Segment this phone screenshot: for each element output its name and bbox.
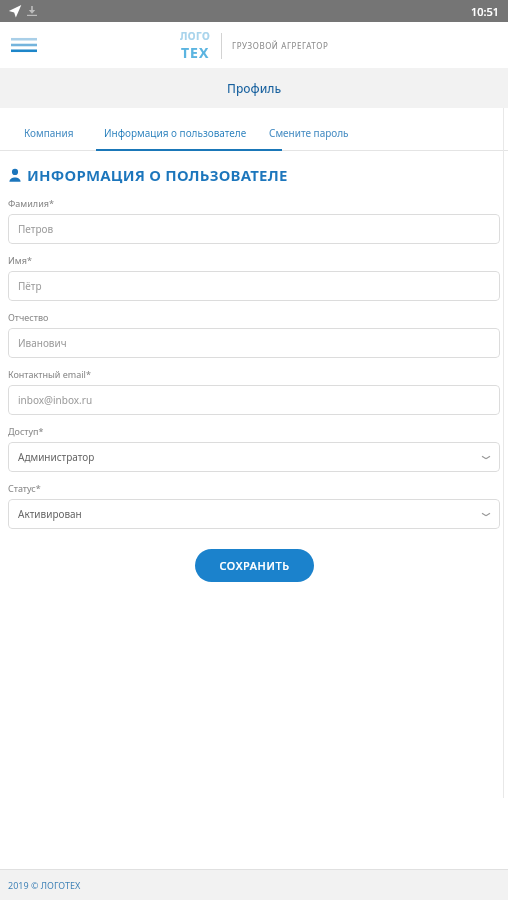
staticText: inbox@inbox.ru [18,393,490,407]
button[interactable]: inbox@inbox.ru [8,385,500,415]
staticText: ЛОГО [180,29,211,43]
staticText: Фамилия* [8,197,54,209]
button[interactable]: Компания [22,122,76,144]
staticText: Статус* [8,482,41,494]
staticText: 2019 © ЛОГОТЕХ [8,879,81,891]
staticText: ТЕХ [181,43,210,62]
staticText: ГРУЗОВОЙ АГРЕГАТОР [232,40,329,51]
staticText: Имя* [8,254,32,266]
staticText: Информация о пользователе [104,126,247,140]
button[interactable]: Администратор [8,442,500,472]
button[interactable]: Активирован [8,499,500,529]
staticText: Доступ* [8,425,44,437]
button[interactable]: Смените пароль [267,122,351,144]
button[interactable]: СОХРАНИТЬ [195,549,314,582]
staticText: ИНФОРМАЦИЯ О ПОЛЬЗОВАТЕЛЕ [27,165,288,185]
button[interactable]: Петров [8,214,500,244]
staticText: Компания [24,126,74,140]
staticText: 10:51 [471,4,500,19]
staticText: Отчество [8,311,49,323]
staticText: Контактный email* [8,368,91,380]
button[interactable]: Menu [6,27,42,63]
button[interactable]: Иванович [8,328,500,358]
staticText: СОХРАНИТЬ [219,558,290,573]
button[interactable]: Пётр [8,271,500,301]
staticText: Администратор [18,450,482,464]
button[interactable]: Информация о пользователе [102,122,249,144]
staticText: Пётр [18,279,490,293]
staticText: Иванович [18,336,490,350]
staticText: Профиль [227,80,282,96]
staticText: Петров [18,222,490,236]
staticText: Смените пароль [269,126,349,140]
staticText: Активирован [18,507,482,521]
